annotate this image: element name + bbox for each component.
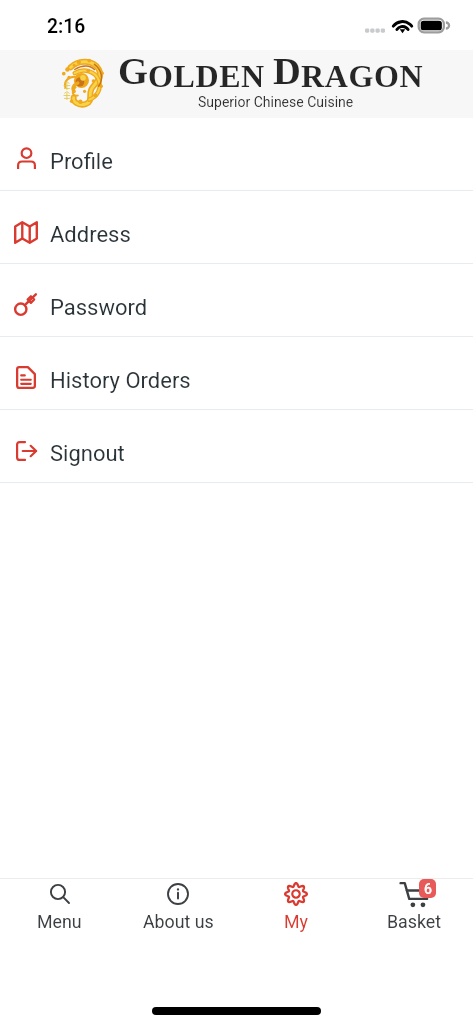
staticText: RAGON bbox=[301, 58, 424, 93]
button[interactable]: Menu bbox=[0, 879, 119, 941]
button[interactable]: Profile bbox=[0, 118, 473, 190]
staticText: D bbox=[273, 50, 301, 93]
button[interactable]: About us bbox=[119, 879, 237, 941]
other: My bbox=[284, 882, 308, 906]
other: About us bbox=[167, 883, 189, 905]
button[interactable]: Password bbox=[0, 264, 473, 336]
staticText: G bbox=[118, 50, 148, 93]
staticText: Basket bbox=[387, 911, 442, 932]
staticText: Profile bbox=[50, 149, 113, 175]
button[interactable]: My bbox=[237, 879, 355, 941]
staticText: OLDEN bbox=[148, 58, 265, 93]
other: Basket bbox=[400, 879, 436, 908]
staticText: Password bbox=[50, 295, 148, 321]
button[interactable]: Basket bbox=[355, 879, 473, 941]
staticText: Signout bbox=[50, 441, 125, 467]
button[interactable]: Signout bbox=[0, 410, 473, 482]
button[interactable]: Address bbox=[0, 191, 473, 263]
staticText: 2:16 bbox=[47, 15, 86, 38]
staticText: My bbox=[284, 911, 308, 932]
staticText: Address bbox=[50, 222, 131, 248]
staticText: Menu bbox=[37, 911, 82, 932]
other: Menu bbox=[50, 884, 70, 904]
staticText: 6 bbox=[424, 881, 432, 897]
button[interactable]: History Orders bbox=[0, 337, 473, 409]
staticText: Superior Chinese Cuisine bbox=[198, 94, 354, 110]
staticText: History Orders bbox=[50, 368, 191, 394]
staticText: About us bbox=[143, 911, 214, 932]
